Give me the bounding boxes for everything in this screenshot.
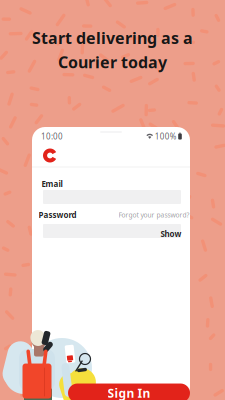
staticText: Password bbox=[38, 210, 76, 220]
button[interactable]: Forgot your password? bbox=[118, 211, 189, 219]
staticText: Email bbox=[41, 179, 62, 189]
staticText: Courier today bbox=[58, 51, 167, 73]
staticText: Start delivering as a bbox=[32, 27, 193, 48]
staticText: Show bbox=[160, 229, 181, 239]
staticText: 100% bbox=[155, 131, 177, 142]
staticText: Sign In bbox=[107, 385, 150, 400]
button[interactable]: Sign In bbox=[68, 383, 190, 400]
button[interactable]: Show bbox=[160, 229, 181, 239]
staticText: Forgot your password? bbox=[118, 211, 189, 219]
staticText: 10:00 bbox=[41, 131, 63, 142]
